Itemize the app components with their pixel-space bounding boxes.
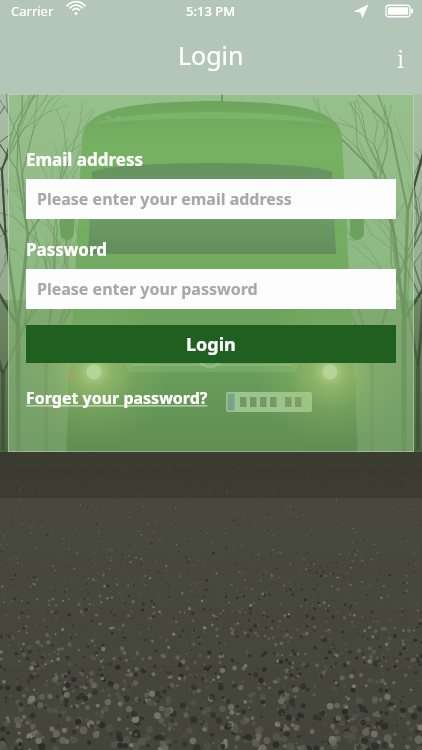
staticText: Carrier — [11, 2, 54, 20]
staticText: Please enter your password — [37, 278, 258, 300]
staticText: i — [397, 43, 404, 74]
staticText: Email address — [26, 148, 143, 171]
staticText: Login — [186, 332, 236, 357]
button[interactable]: Information — [378, 30, 422, 74]
button[interactable]: Forget your password? — [26, 387, 208, 409]
staticText: Forget your password? — [26, 387, 208, 409]
button[interactable]: Login — [26, 325, 396, 363]
staticText: 5:13 PM — [186, 2, 236, 20]
staticText: Please enter your email address — [37, 188, 292, 210]
button[interactable]: Please enter your password — [26, 269, 396, 309]
button[interactable]: Please enter your email address — [26, 179, 396, 219]
staticText: Password — [26, 238, 107, 261]
staticText: Login — [178, 38, 244, 72]
